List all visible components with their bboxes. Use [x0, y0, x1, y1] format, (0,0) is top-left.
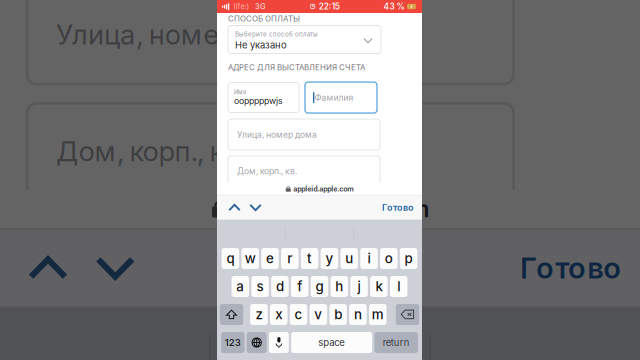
button[interactable]: p [400, 248, 418, 269]
button[interactable]: 123 [222, 332, 245, 353]
button[interactable]: Выберите способ оплаты [228, 25, 381, 53]
button[interactable]: Улица, номер дома [228, 119, 380, 150]
button[interactable]: k [370, 276, 388, 297]
staticText: x [276, 306, 283, 322]
staticText: СПОСОБ ОПЛАТЫ [228, 14, 300, 23]
button[interactable]: Фамилия [305, 82, 377, 113]
button[interactable]: z [250, 304, 268, 325]
staticText: q [227, 250, 235, 266]
button[interactable]: k [371, 276, 388, 297]
button[interactable]: d [272, 276, 289, 297]
button[interactable]: o [380, 248, 398, 269]
button[interactable]: Delete [396, 304, 420, 325]
button[interactable]: w [241, 248, 259, 269]
button[interactable]: Shift [220, 304, 244, 325]
button[interactable]: Next field [245, 195, 266, 220]
staticText: g [315, 278, 323, 294]
button[interactable]: n [350, 304, 367, 325]
button[interactable]: r [281, 248, 299, 269]
button[interactable]: y [321, 248, 339, 269]
button[interactable]: return [375, 332, 418, 353]
button[interactable]: return [374, 332, 418, 353]
button[interactable]: i [360, 248, 378, 269]
button[interactable]: Previous field [224, 195, 245, 220]
button[interactable]: d [271, 276, 289, 297]
button[interactable]: l [390, 276, 407, 297]
button[interactable]: j [351, 276, 368, 297]
button[interactable]: space [292, 332, 373, 353]
button[interactable]: m [369, 304, 387, 325]
button[interactable]: v [310, 304, 327, 325]
button[interactable]: g [311, 276, 328, 297]
button[interactable]: e [262, 248, 279, 269]
staticText: o [385, 250, 393, 266]
staticText: s [257, 278, 264, 294]
button[interactable]: Next keyboard [247, 332, 267, 353]
button[interactable]: l [390, 276, 408, 297]
button[interactable]: Дом, корп., кв. [228, 156, 380, 186]
button[interactable]: g [311, 276, 329, 297]
button[interactable]: f [291, 276, 308, 297]
button[interactable]: m [369, 304, 386, 325]
button[interactable]: t [301, 248, 318, 269]
button[interactable]: p [400, 248, 417, 269]
button[interactable]: v [310, 304, 328, 325]
button[interactable]: Delete [396, 304, 419, 325]
staticText: 43 % [384, 1, 405, 11]
button[interactable]: s [252, 276, 269, 297]
button[interactable]: x [270, 304, 287, 325]
button[interactable]: Выберите способ оплаты [228, 25, 381, 53]
staticText: r [288, 250, 293, 266]
staticText: k [375, 278, 382, 294]
staticText: h [335, 278, 343, 294]
button[interactable]: Улица, номер дома [228, 119, 380, 150]
button[interactable]: y [321, 248, 338, 269]
button[interactable]: h [331, 276, 349, 297]
button[interactable]: i [361, 248, 378, 269]
button[interactable]: u [341, 248, 358, 269]
button[interactable]: c [290, 304, 307, 325]
staticText: m [372, 306, 384, 322]
button[interactable]: n [349, 304, 367, 325]
button[interactable]: e [261, 248, 279, 269]
button[interactable]: z [251, 304, 268, 325]
button[interactable]: h [331, 276, 348, 297]
button[interactable]: a [232, 276, 249, 297]
button[interactable]: r [282, 248, 299, 269]
staticText: g [316, 278, 324, 294]
button[interactable]: o [381, 248, 398, 269]
button[interactable]: Готово [382, 195, 414, 220]
button[interactable]: s [251, 276, 269, 297]
button[interactable]: Имя [228, 82, 299, 112]
button[interactable]: Имя [228, 82, 299, 112]
staticText: appleid.apple.com [293, 185, 353, 193]
button[interactable]: j [350, 276, 368, 297]
button[interactable]: Shift [220, 304, 243, 325]
button[interactable]: Готово [382, 195, 414, 220]
staticText: p [405, 250, 413, 266]
button[interactable]: Дом, корп., кв. [228, 156, 380, 186]
staticText: n [354, 306, 362, 322]
button[interactable]: w [242, 248, 259, 269]
button[interactable]: u [340, 248, 358, 269]
button[interactable]: Фамилия [305, 82, 377, 113]
button[interactable]: q [222, 248, 240, 269]
button[interactable]: x [270, 304, 288, 325]
staticText: i [367, 250, 370, 266]
button[interactable]: b [330, 304, 347, 325]
button[interactable]: c [290, 304, 308, 325]
button[interactable]: Dictate [269, 332, 289, 353]
button[interactable]: Dictate [269, 332, 289, 353]
button[interactable]: 123 [221, 332, 244, 353]
staticText: l [397, 278, 400, 294]
button[interactable]: Next field [245, 195, 266, 220]
button[interactable]: b [329, 304, 347, 325]
staticText: Не указано [235, 39, 287, 51]
button[interactable]: space [291, 332, 372, 353]
button[interactable]: Previous field [224, 195, 245, 220]
button[interactable]: f [291, 276, 309, 297]
button[interactable]: q [222, 248, 239, 269]
button[interactable]: a [232, 276, 250, 297]
button[interactable]: t [301, 248, 319, 269]
button[interactable]: Next keyboard [247, 332, 267, 353]
